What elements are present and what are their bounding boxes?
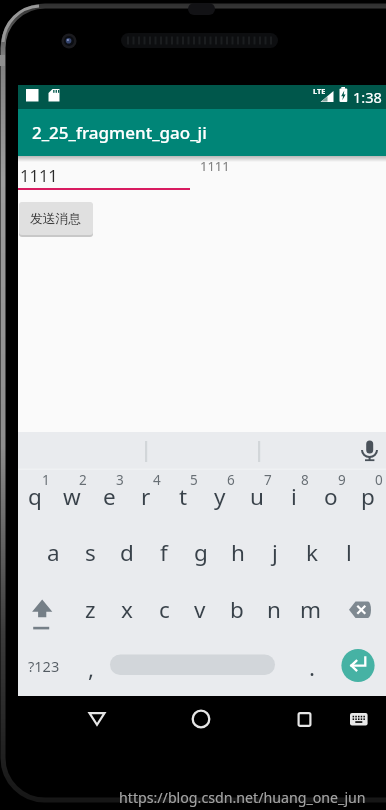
staticText: https://blog.csdn.net/huang_one_jun xyxy=(119,788,366,807)
staticText: ?123 xyxy=(28,656,60,676)
button[interactable]: u xyxy=(240,479,274,513)
button[interactable] xyxy=(78,697,116,729)
button[interactable]: m xyxy=(294,592,328,626)
staticText: l xyxy=(346,537,352,568)
button[interactable] xyxy=(24,584,56,614)
staticText: 3 xyxy=(116,471,124,489)
staticText: , xyxy=(88,653,95,683)
button[interactable]: ?123 xyxy=(22,651,66,681)
button[interactable]: g xyxy=(184,535,218,569)
button[interactable]: 9 xyxy=(332,471,352,489)
staticText: 1 xyxy=(42,471,50,489)
button[interactable]: z xyxy=(73,592,107,626)
button[interactable]: d xyxy=(110,535,144,569)
button[interactable]: c xyxy=(147,592,181,626)
button[interactable]: 发送消息 xyxy=(19,202,93,235)
staticText: 2 xyxy=(79,471,87,489)
button[interactable]: 2 xyxy=(73,471,93,489)
staticText: u xyxy=(250,481,264,512)
staticText: 1111 xyxy=(20,164,58,186)
staticText: z xyxy=(85,594,96,625)
staticText: s xyxy=(85,537,96,568)
staticText: e xyxy=(103,481,116,512)
button[interactable] xyxy=(18,158,190,191)
button[interactable]: n xyxy=(257,592,291,626)
button[interactable] xyxy=(284,697,322,729)
button[interactable]: 7 xyxy=(258,471,278,489)
button[interactable]: x xyxy=(110,592,144,626)
staticText: 6 xyxy=(227,471,235,489)
button[interactable]: v xyxy=(183,592,217,626)
button[interactable]: h xyxy=(221,535,255,569)
button[interactable]: s xyxy=(73,535,107,569)
staticText: y xyxy=(214,481,226,512)
button[interactable]: 3 xyxy=(110,471,130,489)
button[interactable]: r xyxy=(129,479,163,513)
button[interactable]: p xyxy=(351,479,385,513)
staticText: p xyxy=(361,481,375,512)
staticText: n xyxy=(267,594,281,625)
button[interactable]: , xyxy=(78,653,104,683)
staticText: t xyxy=(179,481,188,512)
button[interactable]: 4 xyxy=(147,471,167,489)
button[interactable]: w xyxy=(55,479,89,513)
staticText: LTE xyxy=(313,86,326,96)
staticText: 发送消息 xyxy=(30,211,82,227)
button[interactable]: j xyxy=(258,535,292,569)
button[interactable] xyxy=(182,697,220,729)
staticText: 8 xyxy=(301,471,309,489)
staticText: f xyxy=(160,537,168,568)
staticText: 5 xyxy=(190,471,198,489)
button[interactable]: b xyxy=(220,592,254,626)
staticText: c xyxy=(159,594,170,625)
button[interactable]: l xyxy=(332,535,366,569)
button[interactable]: 8 xyxy=(295,471,315,489)
staticText: . xyxy=(309,652,316,682)
staticText: 4 xyxy=(153,471,161,489)
staticText: 9 xyxy=(338,471,346,489)
button[interactable]: 0 xyxy=(369,471,386,489)
staticText: 0 xyxy=(375,471,383,489)
button[interactable]: i xyxy=(277,479,311,513)
staticText: j xyxy=(272,537,278,568)
button[interactable]: o xyxy=(314,479,348,513)
staticText: 1111 xyxy=(200,157,230,175)
staticText: g xyxy=(194,537,208,568)
button[interactable]: f xyxy=(147,535,181,569)
staticText: a xyxy=(47,537,60,568)
button[interactable]: e xyxy=(92,479,126,513)
staticText: i xyxy=(291,481,297,512)
button[interactable]: y xyxy=(203,479,237,513)
staticText: 1:38 xyxy=(353,87,382,107)
button[interactable]: 1 xyxy=(36,471,56,489)
button[interactable]: q xyxy=(18,479,52,513)
staticText: 2_25_fragment_gao_ji xyxy=(32,121,207,144)
staticText: o xyxy=(324,481,338,512)
staticText: w xyxy=(63,481,81,512)
staticText: m xyxy=(300,594,322,625)
button[interactable] xyxy=(341,648,375,682)
button[interactable]: t xyxy=(166,479,200,513)
button[interactable] xyxy=(352,436,376,460)
staticText: q xyxy=(28,481,42,512)
staticText: 7 xyxy=(264,471,272,489)
button[interactable]: k xyxy=(295,535,329,569)
staticText: h xyxy=(231,537,245,568)
staticText: v xyxy=(194,594,206,625)
button[interactable]: . xyxy=(299,652,325,682)
staticText: k xyxy=(306,537,319,568)
button[interactable] xyxy=(110,654,275,674)
button[interactable]: 5 xyxy=(184,471,204,489)
button[interactable]: a xyxy=(36,535,70,569)
staticText: x xyxy=(121,594,133,625)
button[interactable]: 6 xyxy=(221,471,241,489)
button[interactable] xyxy=(340,584,372,614)
button[interactable] xyxy=(340,697,372,729)
staticText: b xyxy=(230,594,244,625)
staticText: r xyxy=(141,481,151,512)
staticText: d xyxy=(120,537,134,568)
